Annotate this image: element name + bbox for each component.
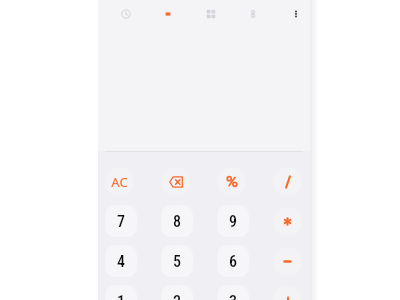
button[interactable]: Minus [273,247,302,276]
button[interactable]: 5 [161,245,193,277]
button[interactable]: Multiply [273,207,302,236]
staticText: 4 [117,252,125,271]
staticText: 9 [229,212,237,231]
staticText: 3 [229,292,237,300]
staticText: 2 [173,292,181,300]
button[interactable]: Currency [245,6,261,22]
button[interactable]: 3 [217,285,249,300]
staticText: 7 [117,212,125,231]
staticText: 8 [173,212,181,231]
button[interactable]: 1 [105,285,137,300]
staticText: 1 [117,292,125,300]
button[interactable]: 6 [217,245,249,277]
button[interactable]: Theme [160,6,176,22]
button[interactable]: 2 [161,285,193,300]
button[interactable]: 4 [105,245,137,277]
button[interactable]: Percent [217,167,246,196]
button[interactable]: 7 [105,205,137,237]
button[interactable]: 9 [217,205,249,237]
button[interactable]: Divide [273,167,302,196]
button[interactable]: More options [288,6,304,22]
button[interactable]: All clear [105,167,134,196]
button[interactable]: History [118,6,134,22]
button[interactable]: Backspace [161,167,190,196]
staticText: AC [111,173,128,191]
staticText: 5 [173,252,181,271]
button[interactable]: 8 [161,205,193,237]
button[interactable]: Grid [203,6,219,22]
button[interactable]: Plus [273,286,302,300]
staticText: 6 [229,252,237,271]
